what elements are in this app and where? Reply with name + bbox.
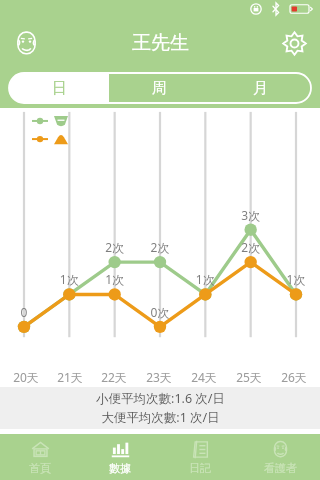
button[interactable]: 周	[109, 73, 210, 103]
staticText: 25天	[236, 369, 262, 385]
staticText: 看護者	[264, 461, 297, 475]
button[interactable]: Profile	[8, 25, 44, 61]
staticText: 22天	[101, 369, 127, 385]
staticText: 20天	[13, 369, 39, 385]
staticText: 數據	[109, 461, 131, 475]
staticText: 26天	[281, 369, 307, 385]
button[interactable]: 首頁	[0, 434, 80, 480]
staticText: 日記	[189, 461, 211, 475]
staticText: 24天	[191, 369, 217, 385]
staticText: 首頁	[29, 461, 51, 475]
staticText: 日	[52, 79, 67, 98]
button[interactable]: 看護者	[240, 434, 320, 480]
button[interactable]: 月	[210, 73, 311, 103]
staticText: 月	[253, 79, 268, 98]
staticText: 周	[152, 79, 167, 98]
staticText: 小便平均次數:1.6 次/日	[96, 390, 225, 407]
staticText: 23天	[146, 369, 172, 385]
staticText: 大便平均次數:1 次/日	[101, 409, 220, 426]
staticText: 21天	[57, 369, 83, 385]
button[interactable]: 日	[9, 73, 109, 103]
button[interactable]: Settings	[276, 25, 312, 61]
button[interactable]: 數據	[80, 434, 160, 480]
staticText: 王先生	[132, 31, 189, 55]
button[interactable]: 日記	[160, 434, 240, 480]
